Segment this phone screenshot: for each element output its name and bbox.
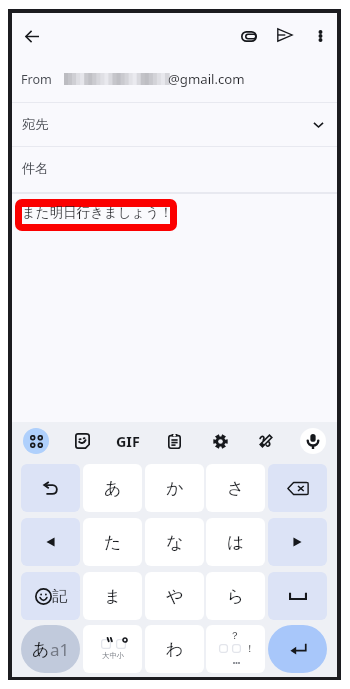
button[interactable]: Space: [268, 572, 327, 620]
button[interactable]: From: [12, 56, 337, 102]
button[interactable]: Move cursor left: [21, 518, 80, 566]
staticText: 。: [232, 644, 241, 653]
staticText: 記: [52, 587, 67, 606]
button[interactable]: More options: [301, 17, 339, 55]
staticText: あ: [32, 639, 50, 660]
button[interactable]: Emoji and symbols: [21, 572, 80, 620]
staticText: ！: [245, 642, 255, 655]
button[interactable]: ら: [206, 572, 265, 620]
staticText: From: [21, 71, 52, 88]
button[interactable]: さ: [206, 464, 265, 512]
staticText: さ: [227, 478, 245, 499]
staticText: か: [166, 478, 184, 499]
button[interactable]: Enter: [268, 625, 327, 673]
button[interactable]: また明日行きましょう！: [12, 194, 337, 422]
staticText: また明日行きましょう！: [22, 204, 173, 221]
staticText: ら: [227, 586, 245, 607]
button[interactable]: Switch input mode: [21, 625, 80, 673]
button[interactable]: Voice input: [294, 422, 332, 460]
staticText: a1: [50, 638, 70, 661]
button[interactable]: ま: [83, 572, 142, 620]
button[interactable]: Handwriting: [247, 422, 285, 460]
staticText: は: [227, 532, 245, 553]
staticText: 、: [219, 644, 228, 653]
button[interactable]: や: [145, 572, 204, 620]
staticText: 件名: [22, 160, 49, 177]
button[interactable]: 宛先: [12, 103, 337, 146]
staticText: 宛先: [22, 116, 49, 133]
staticText: 大中小: [102, 651, 125, 660]
button[interactable]: か: [145, 464, 204, 512]
button[interactable]: わ: [145, 625, 204, 673]
button[interactable]: Clipboard: [155, 422, 193, 460]
button[interactable]: Keyboard settings: [201, 422, 239, 460]
button[interactable]: は: [206, 518, 265, 566]
staticText: な: [166, 532, 184, 553]
button[interactable]: Delete: [268, 464, 327, 512]
button[interactable]: Show more recipients: [299, 106, 337, 144]
staticText: あ: [104, 478, 122, 499]
button[interactable]: Open apps: [17, 422, 55, 460]
button[interactable]: Undo: [21, 464, 80, 512]
button[interactable]: Navigate up: [13, 17, 51, 55]
staticText: @gmail.com: [168, 70, 245, 88]
button[interactable]: Stickers: [63, 422, 101, 460]
button[interactable]: Move cursor right: [268, 518, 327, 566]
button[interactable]: GIF: [109, 422, 147, 460]
staticText: ま: [104, 586, 122, 607]
staticText: た: [104, 532, 122, 553]
staticText: GIF: [116, 432, 140, 451]
staticText: や: [166, 586, 184, 607]
button[interactable]: あ: [83, 464, 142, 512]
button[interactable]: 件名: [12, 147, 337, 189]
staticText: ？: [230, 629, 240, 642]
button[interactable]: た: [83, 518, 142, 566]
button[interactable]: Dakuten and small kana: [83, 625, 142, 673]
button[interactable]: な: [145, 518, 204, 566]
button[interactable]: Attach file: [230, 17, 268, 55]
button[interactable]: Punctuation: [206, 625, 265, 673]
button[interactable]: Send: [266, 16, 304, 54]
staticText: わ: [166, 639, 184, 660]
